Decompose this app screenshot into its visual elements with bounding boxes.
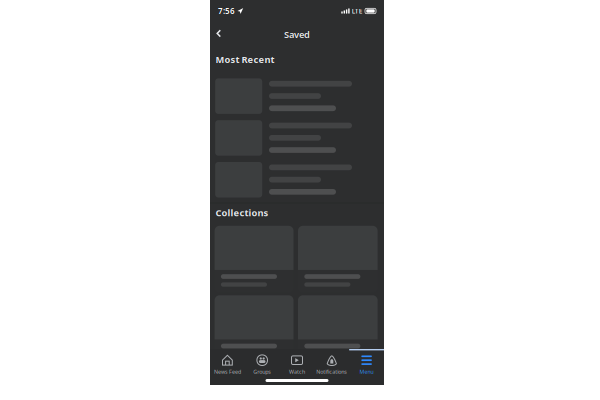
staticText: Groups bbox=[253, 368, 271, 375]
button[interactable] bbox=[215, 162, 384, 204]
staticText: LTE bbox=[352, 7, 363, 15]
button[interactable] bbox=[215, 120, 384, 162]
button[interactable]: News Feed bbox=[210, 349, 245, 378]
button[interactable] bbox=[298, 226, 378, 292]
button[interactable]: Back bbox=[211, 24, 226, 42]
button[interactable]: Groups bbox=[245, 349, 280, 378]
staticText: Saved bbox=[284, 28, 310, 41]
button[interactable] bbox=[215, 226, 293, 292]
button[interactable]: Watch bbox=[280, 349, 314, 378]
staticText: News Feed bbox=[214, 368, 241, 375]
button[interactable] bbox=[298, 295, 378, 362]
staticText: Collections bbox=[215, 206, 268, 219]
staticText: Most Recent bbox=[215, 53, 274, 66]
staticText: Menu bbox=[360, 368, 374, 375]
button[interactable] bbox=[215, 295, 293, 362]
button[interactable]: Notifications bbox=[314, 349, 349, 378]
button[interactable] bbox=[215, 78, 384, 120]
staticText: Notifications bbox=[316, 368, 347, 375]
button[interactable]: Menu bbox=[349, 349, 384, 378]
staticText: Watch bbox=[289, 368, 305, 375]
staticText: 7:56 bbox=[218, 6, 235, 16]
